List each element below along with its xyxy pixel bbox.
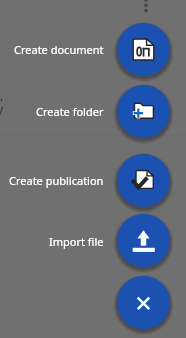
staticText: Create publication: [9, 173, 104, 188]
staticText: y: [0, 101, 4, 117]
button[interactable]: Create publication: [117, 154, 170, 207]
button[interactable]: Import file: [117, 214, 170, 267]
staticText: Create document: [14, 42, 104, 57]
staticText: Import file: [49, 234, 104, 249]
button[interactable]: Create document: [117, 23, 170, 76]
staticText: Create folder: [36, 104, 104, 119]
button[interactable]: Create document: [0, 38, 104, 60]
staticText: l,: [0, 87, 4, 103]
button[interactable]: Create publication: [0, 169, 104, 191]
button[interactable]: Create folder: [0, 100, 104, 122]
button[interactable]: Create folder: [117, 85, 170, 138]
button[interactable]: More options: [136, 0, 156, 17]
button[interactable]: Import file: [0, 230, 104, 252]
button[interactable]: Close: [117, 276, 170, 329]
